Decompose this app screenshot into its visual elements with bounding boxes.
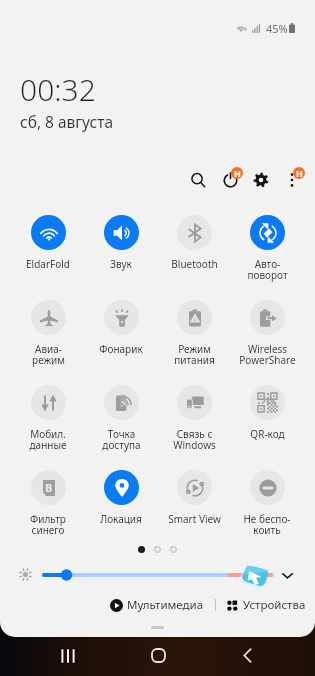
staticText: Точка доступа (102, 429, 141, 451)
staticText: Локация (100, 514, 142, 525)
button[interactable]: Локация (85, 470, 157, 525)
staticText: Wireless PowerShare (239, 344, 296, 366)
staticText: Авто- поворот (247, 259, 288, 281)
staticText: B (45, 480, 53, 495)
staticText: Bluetooth (171, 259, 218, 270)
button[interactable]: Режим питания (158, 300, 230, 366)
staticText: Мобил. данные (29, 429, 67, 451)
button[interactable]: Авиа- режим (12, 300, 84, 366)
button[interactable]: Авто- поворот (231, 215, 303, 281)
button[interactable]: Устройства (227, 597, 306, 613)
button[interactable]: Settings (246, 165, 276, 195)
staticText: H (234, 167, 241, 179)
staticText: Мультимедиа (127, 597, 204, 613)
button[interactable]: Back (226, 635, 268, 676)
staticText: Режим питания (174, 344, 215, 366)
button[interactable]: Bluetooth (158, 215, 230, 270)
staticText: Не беспо- коить (243, 514, 291, 536)
staticText: сб, 8 августа (20, 111, 114, 132)
staticText: Звук (110, 259, 132, 270)
staticText: Фильтр синего (30, 514, 66, 536)
button[interactable]: Power off (215, 165, 245, 195)
button[interactable]: QR-код (231, 385, 303, 440)
staticText: 45% (266, 21, 288, 36)
staticText: EldarFold (26, 259, 70, 270)
staticText: Smart View (168, 514, 221, 525)
staticText: 00:32 (20, 69, 96, 110)
staticText: Связь с Windows (173, 429, 216, 451)
staticText: Устройства (243, 597, 306, 613)
staticText: H (296, 167, 303, 179)
button[interactable]: Фонарик (85, 300, 157, 355)
button[interactable]: Brightness (42, 565, 274, 585)
button[interactable]: More options (277, 165, 307, 195)
button[interactable]: Мультимедиа (110, 597, 204, 613)
button[interactable]: Точка доступа (85, 385, 157, 451)
button[interactable]: Не беспо- коить (231, 470, 303, 536)
button[interactable]: Мобил. данные (12, 385, 84, 451)
button[interactable]: Recents (47, 635, 89, 676)
button[interactable]: Home (137, 635, 179, 676)
button[interactable]: Expand (275, 563, 299, 587)
button[interactable]: Звук (85, 215, 157, 270)
button[interactable]: Smart View (158, 470, 230, 525)
staticText: Фонарик (99, 344, 143, 355)
staticText: Авиа- режим (32, 344, 65, 366)
button[interactable]: Связь с Windows (158, 385, 230, 451)
staticText: QR-код (250, 429, 285, 440)
button[interactable]: EldarFold (12, 215, 84, 270)
button[interactable]: B (12, 470, 84, 536)
button[interactable]: Wireless PowerShare (231, 300, 303, 366)
button[interactable]: Search (183, 165, 213, 195)
